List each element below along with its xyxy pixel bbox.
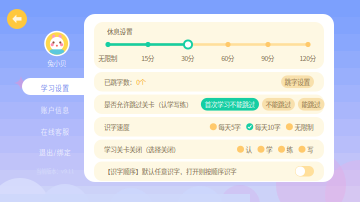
button[interactable]: 在线客服 <box>22 123 88 140</box>
staticText: 练 <box>286 144 293 154</box>
button[interactable]: 不能跳过 <box>262 98 295 111</box>
button[interactable]: 写 <box>298 144 314 154</box>
staticText: 认 <box>245 144 252 154</box>
staticText: 识字速度 <box>104 122 130 132</box>
button[interactable]: 学习设置 <box>22 79 88 96</box>
button[interactable]: 能跳过 <box>298 98 324 111</box>
button[interactable]: 认 <box>237 144 252 154</box>
staticText: 【识字顺序】默认任意识字，打开则按顺序识字 <box>104 166 237 176</box>
staticText: 30分 <box>181 53 195 63</box>
button[interactable]: 账户信息 <box>22 101 88 118</box>
staticText: 首次学习不能跳过 <box>204 99 255 109</box>
button[interactable]: 退出/绑定 <box>22 143 88 160</box>
button[interactable]: 识字顺序开关 <box>295 166 314 176</box>
staticText: 已跳字数： <box>104 77 136 87</box>
staticText: 是否允许跳过关卡（认学写练） <box>104 99 193 109</box>
button[interactable]: 首次学习不能跳过 <box>201 98 259 111</box>
staticText: 每天10字 <box>255 122 281 132</box>
staticText: 学习关卡关闭（选择关闭） <box>104 144 180 154</box>
staticText: 账户信息 <box>41 105 69 115</box>
staticText: 学 <box>266 144 273 154</box>
button[interactable]: 学 <box>257 144 273 154</box>
staticText: 无限制 <box>294 122 314 132</box>
staticText: 无限制 <box>98 53 118 63</box>
staticText: 不能跳过 <box>265 99 291 109</box>
button[interactable]: 每天10字 <box>246 122 281 132</box>
staticText: 0个 <box>136 77 146 87</box>
staticText: 休息设置 <box>107 27 133 36</box>
staticText: 120分 <box>300 53 316 63</box>
staticText: 能跳过 <box>301 99 321 109</box>
staticText: 90分 <box>261 53 275 63</box>
button[interactable]: 返回 <box>7 9 27 29</box>
button[interactable]: 练 <box>278 144 293 154</box>
staticText: 当前版本：v9.11 <box>36 167 74 175</box>
staticText: 写 <box>307 144 314 154</box>
staticText: 每天5字 <box>218 122 241 132</box>
button[interactable]: 跳字设置 <box>281 75 314 88</box>
staticText: 15分 <box>141 53 155 63</box>
staticText: 退出/绑定 <box>39 147 71 157</box>
staticText: 学习设置 <box>41 83 69 93</box>
button[interactable]: 无限制 <box>286 122 314 132</box>
staticText: 兔小贝 <box>47 58 67 68</box>
button[interactable]: 每天5字 <box>210 122 241 132</box>
staticText: 在线客服 <box>41 127 69 137</box>
staticText: 60分 <box>221 53 235 63</box>
staticText: 跳字设置 <box>285 77 310 87</box>
